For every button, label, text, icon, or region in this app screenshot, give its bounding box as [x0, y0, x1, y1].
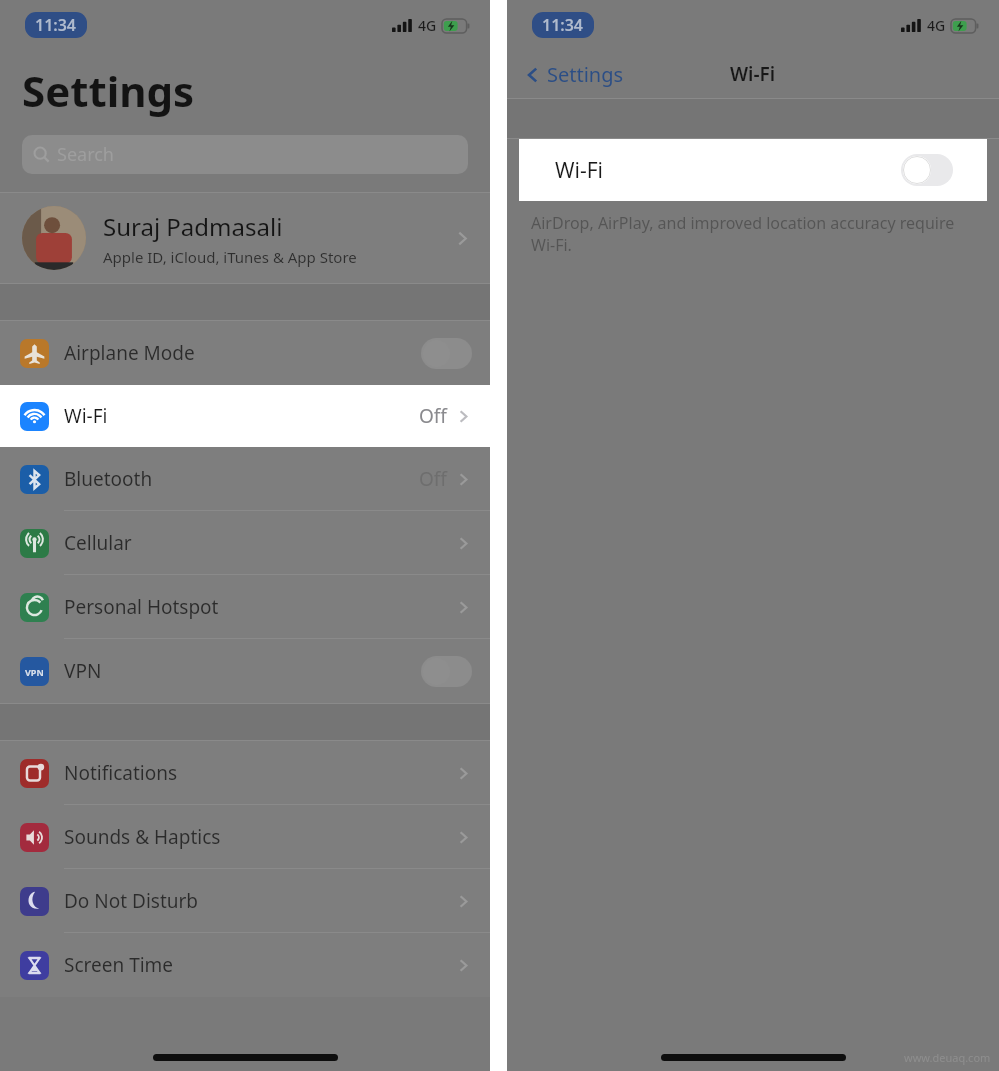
button[interactable]: VPN [0, 639, 490, 703]
button[interactable]: Cellular [0, 511, 490, 575]
staticText: Airplane Mode [64, 340, 421, 366]
button[interactable]: Screen Time [0, 933, 490, 997]
staticText: Wi-Fi [555, 156, 901, 185]
button[interactable]: Wi-Fi [0, 385, 490, 447]
button[interactable]: Wi-Fi [519, 139, 987, 201]
button[interactable]: Bluetooth [0, 447, 490, 511]
staticText: Sounds & Haptics [64, 824, 455, 850]
staticText: Off [419, 466, 447, 492]
staticText: Notifications [64, 760, 455, 786]
staticText: Settings [547, 61, 624, 88]
staticText: Do Not Disturb [64, 888, 455, 914]
button[interactable]: VPN toggle [421, 656, 472, 687]
staticText: Personal Hotspot [64, 594, 455, 620]
staticText: Search [57, 142, 114, 167]
staticText: Cellular [64, 530, 455, 556]
staticText: Apple ID, iCloud, iTunes & App Store [103, 247, 357, 267]
staticText: 4G [418, 16, 437, 35]
button[interactable]: Personal Hotspot [0, 575, 490, 639]
staticText: Settings [22, 62, 195, 119]
staticText: VPN [25, 666, 44, 678]
staticText: 11:34 [542, 14, 584, 36]
staticText: www.deuaq.com [904, 1050, 991, 1065]
button[interactable]: Airplane Mode toggle [421, 338, 472, 369]
button[interactable]: Suraj Padmasali [0, 192, 490, 284]
staticText: AirDrop, AirPlay, and improved location … [531, 212, 969, 256]
button[interactable]: Do Not Disturb [0, 869, 490, 933]
staticText: Bluetooth [64, 466, 419, 492]
staticText: Wi-Fi [730, 61, 776, 87]
staticText: Off [419, 403, 447, 429]
staticText: Suraj Padmasali [103, 210, 283, 243]
button[interactable]: Notifications [0, 741, 490, 805]
button[interactable]: Settings [523, 61, 624, 88]
staticText: Screen Time [64, 952, 455, 978]
staticText: VPN [64, 658, 421, 684]
staticText: 4G [927, 16, 946, 35]
button[interactable]: Airplane Mode [0, 321, 490, 385]
staticText: Wi-Fi [64, 403, 419, 429]
button[interactable]: Wi-Fi toggle [901, 154, 953, 186]
staticText: 11:34 [35, 14, 77, 36]
button[interactable]: Sounds & Haptics [0, 805, 490, 869]
